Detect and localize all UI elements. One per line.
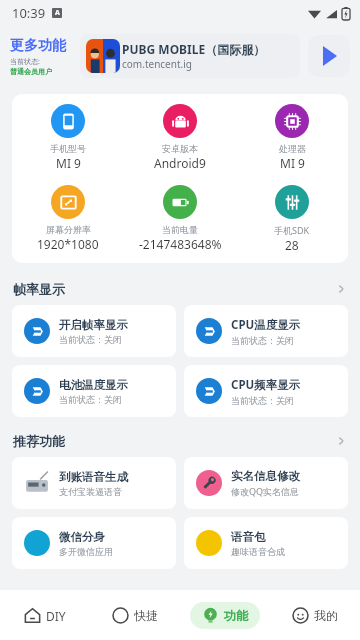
staticText: 快捷	[134, 608, 158, 623]
staticText: 当前状态：关闭	[231, 395, 294, 406]
staticText: 当前电量	[162, 224, 198, 235]
staticText: 当前状态:	[10, 57, 40, 67]
staticText: 处理器	[279, 143, 306, 154]
staticText: 语音包	[231, 530, 266, 544]
staticText: 当前状态：关闭	[59, 334, 122, 345]
staticText: MI 9	[56, 155, 81, 171]
staticText: 10:39	[12, 4, 46, 22]
staticText: 趣味语音合成	[231, 546, 285, 557]
staticText: 功能	[224, 608, 248, 623]
button[interactable]: 开启帧率显示	[12, 305, 176, 357]
button[interactable]: 语音包	[184, 517, 348, 569]
staticText: 手机型号	[50, 143, 86, 154]
button[interactable]: CPU温度显示	[184, 305, 348, 357]
other: 功能	[202, 607, 219, 624]
button[interactable]: 电池温度显示	[12, 365, 176, 417]
staticText: 实名信息修改	[231, 469, 300, 483]
staticText: 电池温度显示	[59, 378, 128, 392]
button[interactable]: 我的	[270, 590, 360, 640]
staticText: 28	[285, 237, 299, 253]
button[interactable]: 帧率显示	[0, 273, 360, 305]
other: 快捷	[112, 607, 129, 624]
button[interactable]: 推荐功能	[0, 425, 360, 457]
staticText: 开启帧率显示	[59, 318, 128, 332]
staticText: Android9	[154, 155, 206, 171]
staticText: 修改QQ实名信息	[231, 485, 300, 497]
button[interactable]: 微信分身	[12, 517, 176, 569]
staticText: 多开微信应用	[59, 546, 113, 557]
staticText: 微信分身	[59, 530, 105, 544]
staticText: 屏幕分辨率	[46, 224, 91, 235]
staticText: 当前状态：关闭	[231, 335, 294, 346]
staticText: com.tencent.ig	[122, 57, 192, 71]
other: 我的	[292, 607, 309, 624]
other: DIY	[24, 607, 41, 624]
staticText: 帧率显示	[13, 281, 65, 297]
staticText: DIY	[46, 608, 66, 624]
button[interactable]: 实名信息修改	[184, 457, 348, 509]
staticText: 1920*1080	[37, 236, 99, 252]
button[interactable]: DIY	[0, 590, 90, 640]
staticText: CPU频率显示	[231, 377, 301, 393]
button[interactable]: 到账语音生成	[12, 457, 176, 509]
button[interactable]: PUBG MOBILE（国际服）	[80, 34, 300, 78]
staticText: CPU温度显示	[231, 317, 301, 333]
button[interactable]: 快捷	[90, 590, 180, 640]
staticText: 支付宝装逼语音	[59, 486, 122, 497]
staticText: -2147483648%	[139, 236, 222, 252]
staticText: 普通会员用户	[10, 67, 52, 76]
staticText: 推荐功能	[13, 433, 65, 449]
staticText: 手机SDK	[274, 224, 310, 236]
button[interactable]: 功能	[180, 590, 270, 640]
staticText: 到账语音生成	[59, 470, 128, 484]
button[interactable]: CPU频率显示	[184, 365, 348, 417]
staticText: 安卓版本	[162, 143, 198, 154]
staticText: 我的	[314, 608, 338, 623]
staticText: 更多功能	[10, 37, 66, 55]
staticText: MI 9	[280, 155, 305, 171]
staticText: 当前状态：关闭	[59, 394, 122, 405]
button[interactable]: Play	[308, 35, 350, 77]
staticText: PUBG MOBILE（国际服）	[122, 41, 266, 57]
staticText: A	[55, 8, 60, 18]
